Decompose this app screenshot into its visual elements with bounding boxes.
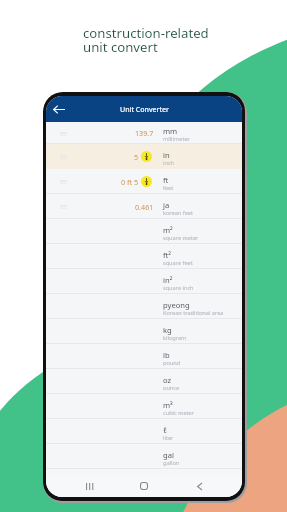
button[interactable]: ℓ xyxy=(46,419,242,444)
staticText: ft xyxy=(163,175,169,185)
staticText: gal xyxy=(163,450,174,460)
staticText: 139.7 xyxy=(135,128,154,138)
button[interactable]: Home xyxy=(135,477,153,495)
button[interactable]: Back xyxy=(190,477,208,495)
button[interactable]: m³ xyxy=(46,394,242,419)
staticText: cubic meter xyxy=(163,409,195,417)
button[interactable]: oz xyxy=(46,369,242,394)
staticText: Korean traditional area xyxy=(163,309,224,317)
button[interactable]: 5 xyxy=(46,144,242,169)
staticText: square feet xyxy=(163,259,193,267)
staticText: 5 xyxy=(134,152,139,162)
staticText: feet xyxy=(163,184,174,192)
button[interactable]: gal xyxy=(46,444,242,469)
button[interactable]: Recent apps xyxy=(80,477,98,495)
staticText: mm xyxy=(163,126,178,136)
staticText: construction-related unit convert xyxy=(83,24,209,56)
button[interactable]: 0 ft 5 xyxy=(46,169,242,194)
staticText: m² xyxy=(163,225,173,235)
staticText: in² xyxy=(163,275,173,285)
button[interactable]: in² xyxy=(46,269,242,294)
button[interactable]: pyeong xyxy=(46,294,242,319)
button[interactable]: Back xyxy=(48,98,70,120)
staticText: inch xyxy=(163,159,175,167)
staticText: millimeter xyxy=(163,135,190,143)
staticText: kg xyxy=(163,325,172,335)
staticText: korean feet xyxy=(163,209,194,217)
staticText: m³ xyxy=(163,400,173,410)
staticText: ℓ xyxy=(163,425,167,435)
button[interactable]: 139.7 xyxy=(46,122,242,144)
staticText: pyeong xyxy=(163,300,190,310)
staticText: oz xyxy=(163,375,172,385)
button[interactable]: lb xyxy=(46,344,242,369)
button[interactable]: 0.461 xyxy=(46,194,242,219)
button[interactable]: kg xyxy=(46,319,242,344)
staticText: kilogram xyxy=(163,334,187,342)
staticText: gallon xyxy=(163,459,180,467)
staticText: 0 ft 5 xyxy=(121,177,139,187)
staticText: pound xyxy=(163,359,181,367)
staticText: square meter xyxy=(163,234,199,242)
staticText: 0.461 xyxy=(135,202,154,212)
staticText: ounce xyxy=(163,384,180,392)
staticText: square inch xyxy=(163,284,194,292)
staticText: lb xyxy=(163,350,170,360)
staticText: ft² xyxy=(163,250,172,260)
staticText: liter xyxy=(163,434,174,442)
button[interactable]: m² xyxy=(46,219,242,244)
button[interactable]: ft² xyxy=(46,244,242,269)
staticText: in xyxy=(163,150,170,160)
staticText: ja xyxy=(163,200,170,210)
staticText: Unit Converter xyxy=(120,104,169,114)
